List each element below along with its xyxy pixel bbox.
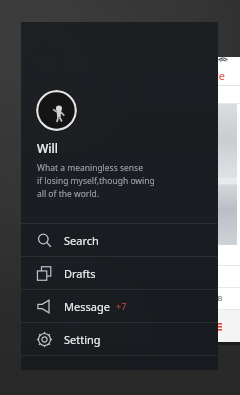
staticText: Message xyxy=(64,299,110,314)
staticText: Search xyxy=(64,233,99,248)
staticText: Active xyxy=(194,68,225,83)
staticText: What a meaningless sense if losing mysel… xyxy=(37,162,155,200)
button[interactable]: Setting xyxy=(21,323,218,355)
button[interactable]: Drafts xyxy=(21,257,218,289)
staticText: Setting xyxy=(64,332,101,347)
staticText: Darian B xyxy=(194,294,223,304)
staticText: +7 xyxy=(116,300,127,312)
button[interactable]: Message xyxy=(21,290,218,322)
staticText: Drafts xyxy=(64,266,96,281)
button[interactable]: Search xyxy=(21,224,218,256)
staticText: 991 xyxy=(205,251,216,259)
button[interactable]: Menu xyxy=(204,318,226,335)
button[interactable]: Profile photo xyxy=(36,90,77,131)
staticText: Will xyxy=(37,140,59,156)
